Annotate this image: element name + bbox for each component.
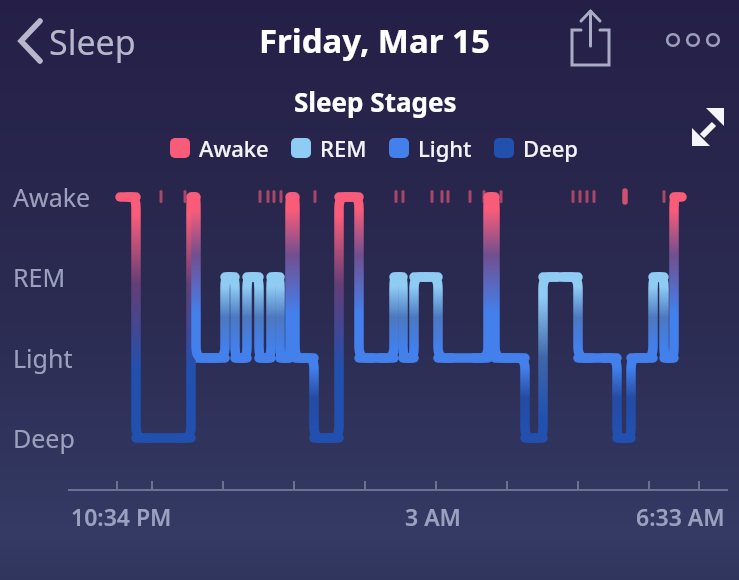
button[interactable] (686, 106, 730, 150)
button[interactable]: Sleep (12, 12, 162, 70)
staticText: Light (418, 133, 472, 163)
staticText: Friday, Mar 15 (259, 18, 490, 63)
staticText: Awake (13, 180, 91, 214)
staticText: REM (13, 260, 66, 294)
button[interactable] (560, 8, 620, 70)
staticText: 6:33 AM (636, 501, 725, 532)
staticText: Sleep Stages (294, 84, 457, 119)
button[interactable] (660, 22, 726, 60)
staticText: Sleep (49, 19, 136, 65)
staticText: 3 AM (405, 501, 461, 532)
staticText: Deep (13, 421, 75, 455)
staticText: 10:34 PM (71, 501, 172, 532)
staticText: Awake (199, 133, 269, 163)
staticText: Light (13, 341, 73, 375)
staticText: REM (320, 133, 367, 163)
staticText: Deep (523, 133, 578, 163)
